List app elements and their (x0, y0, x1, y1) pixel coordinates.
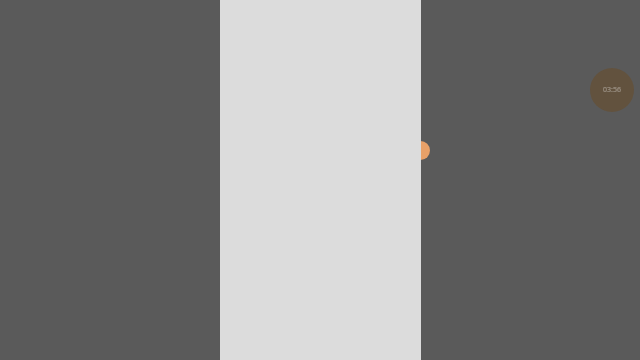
staticText: 03:56 (603, 85, 621, 95)
button[interactable]: Floating action button (411, 141, 430, 160)
button[interactable]: Recording timer (590, 68, 634, 112)
